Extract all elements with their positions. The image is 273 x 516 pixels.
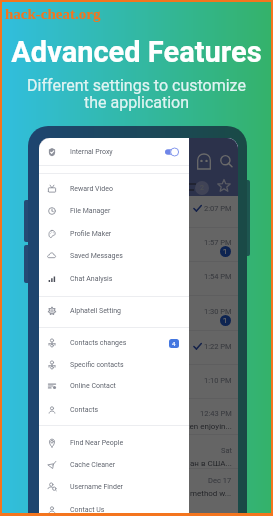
staticText: 1:10 PM <box>204 376 232 385</box>
staticText: 12:43 PM <box>200 409 232 418</box>
staticText: method w... <box>190 489 232 498</box>
staticText: Contacts <box>70 406 99 414</box>
staticText: 1:22 PM <box>204 342 232 351</box>
staticText: Dec 17 <box>208 476 232 485</box>
button[interactable]: Chat Analysis <box>39 268 189 290</box>
staticText: 1:30 PM <box>204 307 232 316</box>
button[interactable]: Contacts changes <box>39 332 189 354</box>
button[interactable]: Profile Maker <box>39 223 189 245</box>
staticText: Different settings to customize the appl… <box>2 76 271 112</box>
button[interactable]: Reward Video <box>39 178 189 200</box>
button[interactable]: Username Finder <box>39 476 189 498</box>
button[interactable]: Contact Us <box>39 499 189 513</box>
staticText: ан в США... <box>190 459 232 468</box>
button[interactable]: Contacts <box>39 399 189 421</box>
staticText: 4 <box>172 340 176 347</box>
staticText: Contacts changes <box>70 339 127 347</box>
button[interactable]: Saved Messages <box>39 245 189 267</box>
staticText: Specific contacts <box>70 361 124 369</box>
staticText: hack-cheat.org <box>5 6 101 23</box>
staticText: Reward Video <box>70 185 113 193</box>
staticText: 1:57 PM <box>204 238 232 247</box>
staticText: Sat <box>221 446 232 455</box>
staticText: Cache Cleaner <box>70 461 116 469</box>
staticText: Username Finder <box>70 483 123 491</box>
staticText: Advanced Features <box>2 35 271 69</box>
button[interactable]: Specific contacts <box>39 354 189 376</box>
staticText: Contact Us <box>70 506 105 513</box>
staticText: Profile Maker <box>70 230 112 238</box>
staticText: 1 <box>223 316 228 325</box>
button[interactable]: Online Contact <box>39 375 189 397</box>
staticText: Online Contact <box>70 382 116 390</box>
button[interactable]: Alphatell Setting <box>39 300 189 322</box>
staticText: 2:07 PM <box>204 204 232 213</box>
staticText: Find Near People <box>70 439 124 447</box>
staticText: Alphatell Setting <box>70 307 121 315</box>
staticText: 2 <box>200 184 204 192</box>
button[interactable]: File Manager <box>39 200 189 222</box>
button[interactable]: Cache Cleaner <box>39 454 189 476</box>
staticText: 1:54 PM <box>204 272 232 281</box>
staticText: 1 <box>223 247 228 256</box>
staticText: Chat Analysis <box>70 275 113 283</box>
button[interactable]: Internal Proxy <box>39 141 189 163</box>
staticText: File Manager <box>70 207 111 215</box>
staticText: Internal Proxy <box>70 148 113 156</box>
staticText: Saved Messages <box>70 252 123 260</box>
staticText: ten enjoyin... <box>187 422 232 431</box>
button[interactable]: Find Near People <box>39 432 189 454</box>
